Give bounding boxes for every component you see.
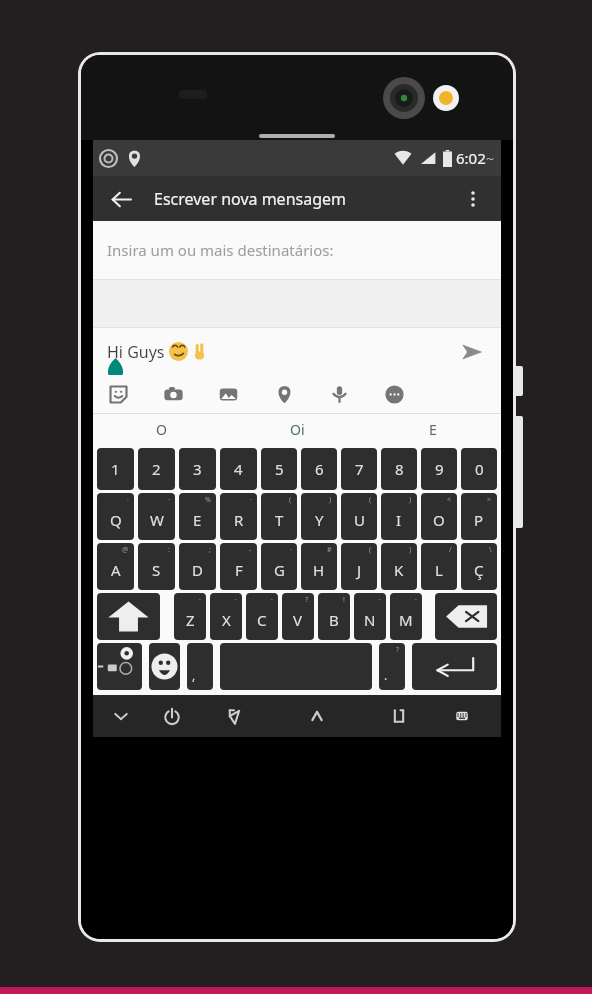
other: Power bbox=[514, 366, 523, 396]
button[interactable]: % bbox=[179, 493, 216, 540]
button[interactable]: Voice bbox=[322, 377, 356, 411]
button[interactable]: 2 bbox=[138, 448, 175, 490]
staticText: K bbox=[394, 560, 404, 580]
staticText: ) bbox=[409, 545, 412, 555]
button[interactable]: Location bbox=[267, 377, 301, 411]
staticText: 7 bbox=[355, 459, 364, 479]
button[interactable]: ( bbox=[341, 543, 377, 590]
staticText: X bbox=[222, 610, 231, 630]
staticText: U bbox=[354, 510, 365, 530]
staticText: ( bbox=[369, 545, 372, 555]
staticText: H bbox=[313, 560, 325, 580]
button[interactable]: · bbox=[97, 493, 134, 540]
button[interactable]: 5 bbox=[261, 448, 297, 490]
button[interactable]: · bbox=[138, 493, 175, 540]
staticText: Z bbox=[186, 610, 195, 630]
staticText: · bbox=[199, 595, 201, 605]
button[interactable]: Home bbox=[266, 695, 367, 737]
button[interactable]: Space bbox=[220, 643, 372, 690]
staticText: N bbox=[364, 610, 376, 630]
button[interactable]: Shift bbox=[97, 593, 160, 640]
button[interactable]: Back bbox=[203, 695, 266, 737]
staticText: E bbox=[429, 420, 437, 439]
button[interactable]: ( bbox=[341, 493, 377, 540]
button[interactable]: O bbox=[93, 414, 229, 445]
staticText: · bbox=[290, 545, 292, 555]
staticText: Hi Guys bbox=[107, 341, 169, 363]
button[interactable]: 4 bbox=[220, 448, 257, 490]
staticText: · bbox=[271, 595, 273, 605]
staticText: , bbox=[192, 667, 196, 683]
button[interactable]: 6 bbox=[301, 448, 337, 490]
staticText: O bbox=[156, 420, 167, 439]
button[interactable]: E bbox=[365, 414, 501, 445]
button[interactable]: ) bbox=[381, 493, 417, 540]
button[interactable]: Enter bbox=[412, 643, 497, 690]
staticText: ) bbox=[409, 495, 412, 505]
button[interactable]: # bbox=[301, 543, 337, 590]
button[interactable]: · bbox=[390, 593, 422, 640]
button[interactable]: Send bbox=[455, 335, 489, 369]
button[interactable]: , bbox=[187, 643, 213, 690]
button[interactable]: Image bbox=[211, 377, 245, 411]
staticText: F bbox=[235, 560, 243, 580]
staticText: L bbox=[435, 560, 443, 580]
staticText: Y bbox=[315, 510, 324, 530]
button[interactable]: · bbox=[261, 543, 297, 590]
staticText: Q bbox=[110, 510, 122, 530]
button[interactable]: Hide keyboard bbox=[101, 695, 140, 737]
staticText: · bbox=[415, 595, 417, 605]
button[interactable]: 3 bbox=[179, 448, 216, 490]
button[interactable]: · bbox=[354, 593, 386, 640]
staticText: . bbox=[384, 667, 388, 683]
button[interactable]: Oi bbox=[229, 414, 365, 445]
button[interactable]: 1 bbox=[97, 448, 134, 490]
staticText: / bbox=[449, 545, 452, 555]
staticText: V bbox=[293, 610, 303, 630]
button[interactable]: / bbox=[421, 543, 457, 590]
button[interactable]: < bbox=[421, 493, 457, 540]
staticText: - bbox=[249, 545, 252, 555]
button[interactable]: More options bbox=[456, 182, 490, 216]
staticText: Ç bbox=[474, 560, 484, 580]
button[interactable]: More bbox=[377, 377, 411, 411]
button[interactable]: ( bbox=[261, 493, 297, 540]
button[interactable]: @ bbox=[97, 543, 134, 590]
button[interactable]: Emoji bbox=[149, 643, 180, 690]
button[interactable]: Power bbox=[140, 695, 203, 737]
button[interactable]: - bbox=[220, 543, 257, 590]
staticText: E bbox=[193, 510, 202, 530]
staticText: C bbox=[257, 610, 267, 630]
button[interactable]: 9 bbox=[421, 448, 457, 490]
staticText: I bbox=[396, 510, 402, 530]
button[interactable]: 8 bbox=[381, 448, 417, 490]
button[interactable]: > bbox=[461, 493, 497, 540]
button[interactable]: \ bbox=[461, 543, 497, 590]
button[interactable]: ! bbox=[318, 593, 350, 640]
button[interactable]: : bbox=[138, 543, 175, 590]
button[interactable]: ; bbox=[179, 543, 216, 590]
button[interactable]: Backspace bbox=[435, 593, 497, 640]
button[interactable]: 0 bbox=[461, 448, 497, 490]
button[interactable]: · bbox=[210, 593, 242, 640]
staticText: 5 bbox=[275, 459, 284, 479]
button[interactable]: ) bbox=[381, 543, 417, 590]
button[interactable]: Switch keyboard bbox=[430, 695, 493, 737]
button[interactable]: Symbols bbox=[97, 643, 142, 690]
staticText: Insira um ou mais destinatários: bbox=[107, 240, 334, 260]
button[interactable]: Sticker bbox=[101, 377, 135, 411]
button[interactable]: · bbox=[246, 593, 278, 640]
button[interactable]: Camera bbox=[156, 377, 190, 411]
button[interactable]: Insira um ou mais destinatários: bbox=[93, 221, 501, 279]
staticText: · bbox=[379, 595, 381, 605]
button[interactable]: ? bbox=[379, 643, 405, 690]
button[interactable]: Recents bbox=[367, 695, 430, 737]
button[interactable]: 7 bbox=[341, 448, 377, 490]
button[interactable]: · bbox=[174, 593, 206, 640]
staticText: ! bbox=[343, 595, 345, 605]
staticText: ? bbox=[305, 595, 309, 605]
button[interactable]: ) bbox=[301, 493, 337, 540]
button[interactable]: Back bbox=[104, 182, 138, 216]
button[interactable]: · bbox=[220, 493, 257, 540]
button[interactable]: ? bbox=[282, 593, 314, 640]
